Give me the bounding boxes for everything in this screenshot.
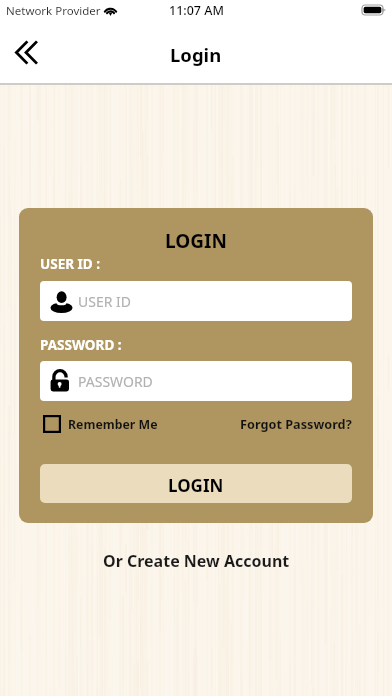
button[interactable]: PASSWORD xyxy=(40,361,352,401)
staticText: PASSWORD xyxy=(78,372,153,391)
staticText: 11:07 AM xyxy=(169,2,224,19)
button[interactable]: Or Create New Account xyxy=(0,550,392,572)
button[interactable]: Back xyxy=(4,30,48,74)
staticText: PASSWORD : xyxy=(40,336,122,354)
staticText: Network Provider xyxy=(6,3,101,19)
staticText: Login xyxy=(170,42,222,67)
staticText: Or Create New Account xyxy=(103,550,290,572)
staticText: Remember Me xyxy=(68,416,158,433)
button[interactable]: Remember Me xyxy=(40,415,158,433)
staticText: LOGIN xyxy=(168,474,224,497)
staticText: USER ID : xyxy=(40,255,101,273)
staticText: Forgot Password? xyxy=(240,415,352,432)
staticText: USER ID xyxy=(78,292,132,311)
button[interactable]: LOGIN xyxy=(40,464,352,503)
staticText: LOGIN xyxy=(165,228,227,254)
button[interactable]: USER ID xyxy=(40,281,352,321)
button[interactable]: Forgot Password? xyxy=(240,415,352,432)
